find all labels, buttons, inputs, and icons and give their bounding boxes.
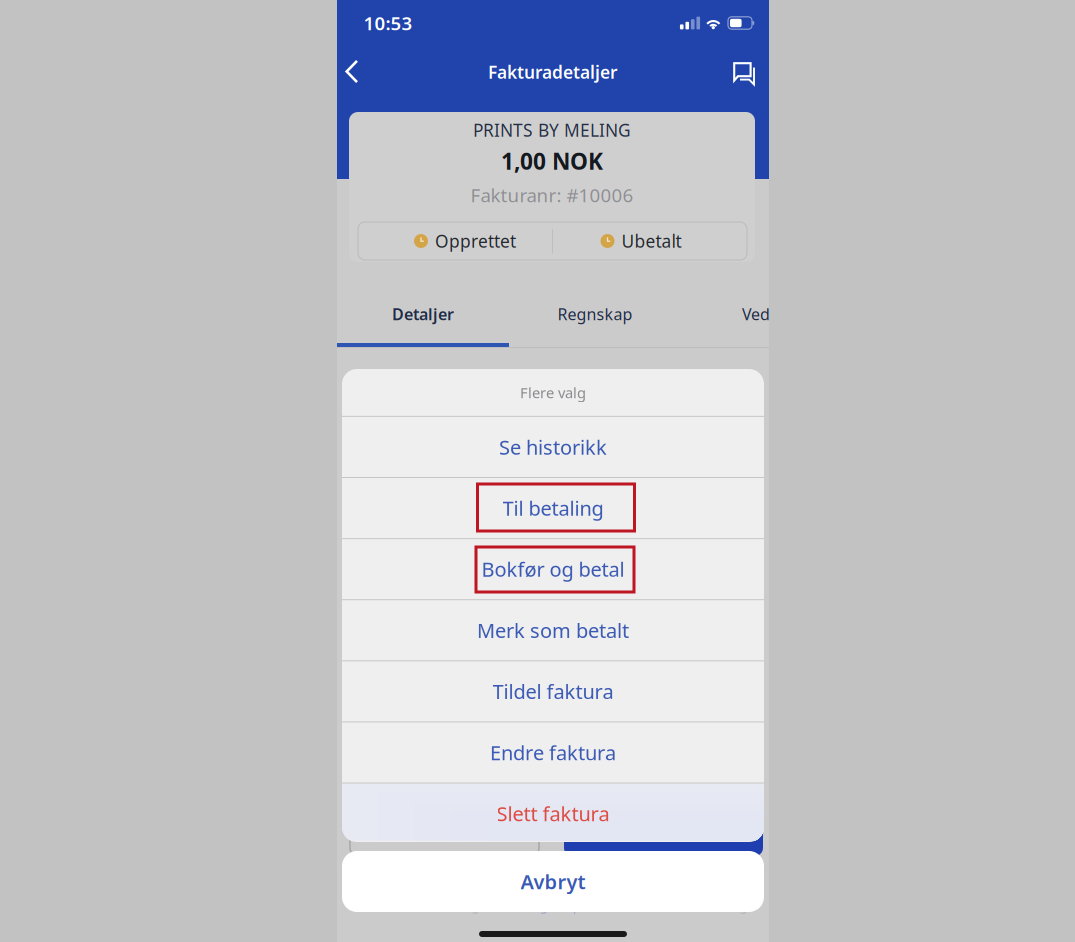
staticText: Detaljer [392,303,454,325]
staticText: Merk som betalt [477,617,629,643]
button[interactable]: Bokfør og betal [342,539,764,600]
staticText: Oversikt [357,898,403,914]
button[interactable]: Avbryt [342,851,764,912]
button[interactable]: Endre faktura [342,722,764,783]
staticText: Salg [455,898,479,914]
staticText: Regnskap [526,898,580,914]
staticText: Flere valg [520,383,586,402]
button[interactable]: Oversikt [337,898,423,914]
button[interactable]: Ved [696,288,816,340]
staticText: Avbryt [520,868,585,895]
staticText: Fakturadetaljer [488,60,618,83]
staticText: 10:53 [363,11,412,35]
button[interactable]: Back [330,49,374,93]
staticText: Bokfør og betal [481,556,624,582]
button[interactable]: Merk som betalt [342,600,764,661]
staticText: Endre faktura [490,739,616,766]
staticText: Slett faktura [496,800,609,827]
button[interactable]: Innstillinger [683,898,769,914]
staticText: Regnskap [557,303,632,325]
button[interactable]: Regnskap [509,288,681,340]
staticText: Til betaling [502,495,603,521]
button[interactable]: Slett faktura [342,783,764,844]
button[interactable]: Messages [723,52,767,96]
button[interactable]: Detaljer [337,288,509,348]
staticText: Se historikk [499,434,607,460]
button[interactable]: Til betaling [342,477,764,538]
button[interactable]: Tildel faktura [342,661,764,722]
staticText: Ved [742,303,770,325]
staticText: Innstillinger [693,898,759,914]
button[interactable]: Arkiv [596,898,683,914]
button[interactable]: Regnskap [510,898,596,914]
staticText: Ubetalt [621,229,681,252]
staticText: PRINTS BY MELING [473,118,631,141]
button[interactable]: Se historikk [342,416,764,477]
staticText: Arkiv [625,898,653,914]
button[interactable]: Salg [423,898,510,914]
staticText: Fakturanr: #10006 [470,183,633,207]
staticText: Opprettet [435,229,516,252]
staticText: 1,00 NOK [501,146,603,176]
staticText: Tildel faktura [492,678,613,705]
